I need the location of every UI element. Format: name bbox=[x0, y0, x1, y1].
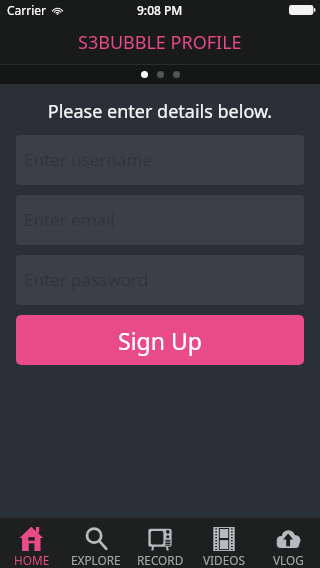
staticText: VLOG bbox=[273, 552, 304, 568]
staticText: EXPLORE bbox=[71, 552, 121, 568]
staticText: Enter username bbox=[24, 148, 152, 171]
button[interactable]: VIDEOS bbox=[192, 518, 256, 568]
staticText: 9:08 PM bbox=[137, 2, 183, 18]
staticText: VIDEOS bbox=[203, 552, 245, 568]
staticText: Please enter details below. bbox=[0, 99, 320, 124]
staticText: Sign Up bbox=[118, 325, 202, 356]
button[interactable]: Sign Up bbox=[16, 315, 304, 365]
staticText: Carrier bbox=[7, 2, 47, 18]
button[interactable]: VLOG bbox=[256, 518, 320, 568]
staticText: S3BUBBLE PROFILE bbox=[78, 30, 242, 55]
staticText: RECORD bbox=[137, 552, 184, 568]
button[interactable]: EXPLORE bbox=[64, 518, 128, 568]
staticText: HOME bbox=[14, 552, 50, 568]
button[interactable]: HOME bbox=[0, 518, 64, 568]
button[interactable]: RECORD bbox=[128, 518, 192, 568]
staticText: Enter password bbox=[24, 268, 149, 291]
staticText: Enter email bbox=[24, 208, 115, 231]
